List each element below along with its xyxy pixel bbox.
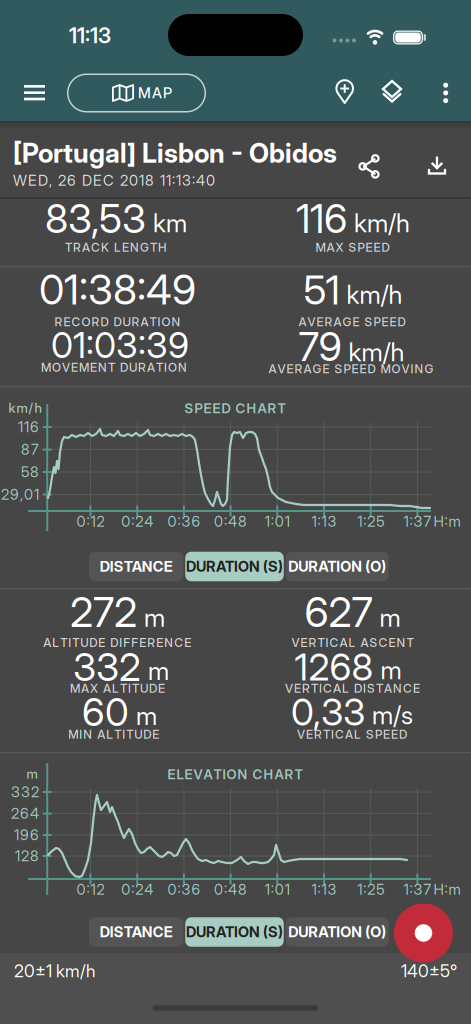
staticText: k m / h <box>8 400 41 416</box>
button[interactable] <box>428 73 464 113</box>
staticText: 0 : 2 4 <box>121 513 153 530</box>
staticText: 51 <box>303 266 339 314</box>
staticText: 0 : 3 6 <box>167 513 200 530</box>
button[interactable] <box>394 903 453 962</box>
staticText: 11:13 <box>69 23 111 48</box>
staticText: 1 1 6 <box>18 418 39 436</box>
staticText: M A P <box>138 84 172 102</box>
staticText: H : m <box>433 513 460 530</box>
staticText: 0 : 3 6 <box>167 881 200 898</box>
staticText: 1 2 8 <box>15 847 39 865</box>
staticText: m <box>380 655 401 685</box>
staticText: 0 : 2 4 <box>121 881 153 898</box>
staticText: 1 : 3 7 <box>403 881 431 898</box>
staticText: 1 : 1 3 <box>311 513 336 530</box>
staticText: 01:38:49 <box>39 265 196 314</box>
staticText: 8 7 <box>21 441 39 458</box>
button[interactable]: DURATION (O) <box>286 917 389 947</box>
staticText: A V E R A G E S P E E D M O V I N G <box>268 362 433 376</box>
staticText: DURATION (S) <box>186 558 283 575</box>
staticText: 83,53 <box>45 195 146 242</box>
staticText: 01:03:39 <box>51 324 189 366</box>
button[interactable]: DURATION (S) <box>185 552 284 581</box>
staticText: 0 : 1 2 <box>76 881 104 898</box>
staticText: DISTANCE <box>100 558 173 575</box>
button[interactable]: DISTANCE <box>89 917 183 947</box>
staticText: km <box>153 208 187 238</box>
staticText: m <box>26 766 37 782</box>
staticText: H : m <box>433 881 460 898</box>
staticText: M A X S P E E D <box>315 240 389 255</box>
button[interactable]: DISTANCE <box>89 552 183 581</box>
staticText: M A X A L T I T U D E <box>70 681 165 696</box>
staticText: m <box>379 602 400 632</box>
staticText: 2 6 4 <box>11 805 39 822</box>
staticText: 0 : 4 8 <box>214 881 247 898</box>
staticText: km/h <box>354 208 410 238</box>
staticText: 140±5° <box>401 961 457 981</box>
staticText: 2 9 , 0 1 <box>1 486 39 503</box>
staticText: 20±1 km/h <box>14 961 95 981</box>
staticText: 1 : 0 1 <box>265 881 290 898</box>
staticText: A L T I T U D E D I F F E R E N C E <box>43 635 191 650</box>
staticText: 79 <box>298 323 341 370</box>
staticText: T R A C K L E N G T H <box>65 240 167 255</box>
staticText: V E R T I C A L S P E E D <box>297 727 407 742</box>
staticText: km/h <box>346 280 402 310</box>
staticText: S P E E D C H A R T <box>184 401 285 416</box>
staticText: 1 : 0 1 <box>265 513 290 530</box>
button[interactable]: M A P <box>67 73 206 112</box>
staticText: 627 <box>304 588 372 636</box>
staticText: 60 <box>82 689 129 735</box>
staticText: 0 : 1 2 <box>76 513 104 530</box>
staticText: M I N A L T I T U D E <box>68 727 159 742</box>
button[interactable] <box>347 144 391 188</box>
staticText: 5 8 <box>21 463 39 481</box>
staticText: W E D , 2 6 D E C 2 0 1 8 1 1 : 1 3 : 4 … <box>13 172 215 189</box>
staticText: 332 <box>73 644 141 690</box>
staticText: m <box>136 701 157 731</box>
staticText: DURATION (O) <box>288 923 386 941</box>
button[interactable] <box>325 71 365 111</box>
staticText: km/h <box>348 337 404 367</box>
staticText: 1 : 2 5 <box>357 513 384 530</box>
button[interactable] <box>415 144 459 188</box>
button[interactable]: DURATION (S) <box>185 917 284 947</box>
staticText: 3 3 2 <box>11 783 39 801</box>
staticText: 0 : 4 8 <box>214 513 247 530</box>
staticText: DURATION (O) <box>288 558 386 575</box>
staticText: 1268 <box>294 645 373 689</box>
staticText: 272 <box>70 588 137 636</box>
staticText: E L E V A T I O N C H A R T <box>167 767 302 782</box>
staticText: A V E R A G E S P E E D <box>298 315 405 329</box>
staticText: 0,33 <box>291 690 365 734</box>
staticText: m <box>144 602 165 632</box>
staticText: 116 <box>296 195 347 242</box>
staticText: DURATION (S) <box>186 923 283 941</box>
staticText: R E C O R D D U R A T I O N <box>54 315 180 329</box>
button[interactable]: DURATION (O) <box>286 552 389 581</box>
button[interactable] <box>14 73 54 113</box>
staticText: 1 : 1 3 <box>311 881 336 898</box>
staticText: m/s <box>372 700 413 730</box>
staticText: V E R T I C A L D I S T A N C E <box>285 681 420 696</box>
button[interactable] <box>372 71 412 111</box>
staticText: DISTANCE <box>100 923 173 941</box>
staticText: V E R T I C A L A S C E N T <box>291 635 413 650</box>
staticText: 1 : 2 5 <box>357 881 384 898</box>
staticText: 1 : 3 7 <box>403 513 431 530</box>
staticText: m <box>148 656 169 686</box>
staticText: 1 9 6 <box>14 826 39 844</box>
staticText: M O V E M E N T D U R A T I O N <box>41 360 187 375</box>
staticText: [Portugal] Lisbon - Obidos <box>13 137 337 169</box>
